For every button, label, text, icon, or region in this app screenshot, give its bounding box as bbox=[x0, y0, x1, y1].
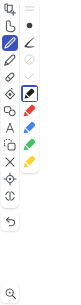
button[interactable]: Laser bbox=[1, 170, 19, 187]
button[interactable]: Image bbox=[1, 136, 19, 153]
button[interactable]: Undo bbox=[1, 211, 19, 231]
button[interactable]: Colour bbox=[20, 17, 39, 34]
button[interactable]: Pan bbox=[1, 17, 19, 34]
button[interactable]: Black pen bbox=[20, 85, 39, 102]
button[interactable]: Clear bbox=[1, 153, 19, 170]
button[interactable]: Done bbox=[20, 68, 39, 85]
button[interactable]: Blue pen bbox=[20, 119, 39, 136]
button[interactable]: Fill bbox=[1, 85, 19, 102]
button[interactable]: Text bbox=[1, 119, 19, 136]
button[interactable]: Select area bbox=[1, 187, 19, 204]
button[interactable]: Red pen bbox=[20, 102, 39, 119]
button[interactable]: No fill bbox=[20, 51, 39, 68]
button[interactable]: Yellow pen bbox=[20, 153, 39, 170]
button[interactable]: Stroke size bbox=[20, 0, 39, 17]
button[interactable]: Shapes bbox=[1, 102, 19, 119]
button[interactable]: Green pen bbox=[20, 136, 39, 153]
button[interactable]: Pen bbox=[1, 34, 19, 51]
button[interactable]: Stroke sample bbox=[20, 34, 39, 51]
button[interactable]: Eraser bbox=[1, 68, 19, 85]
button[interactable]: Highlighter bbox=[1, 51, 19, 68]
button[interactable]: Select bbox=[1, 0, 19, 17]
button[interactable]: Zoom bbox=[1, 283, 19, 303]
